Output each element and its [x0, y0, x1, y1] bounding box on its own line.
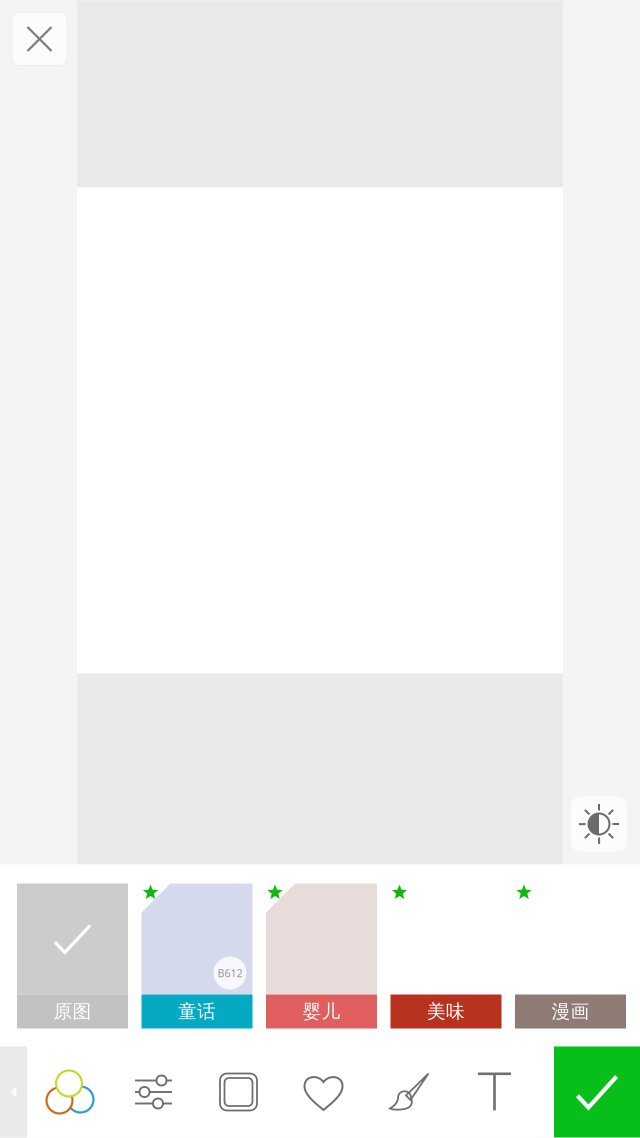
- button[interactable]: Frame: [196, 1046, 281, 1137]
- button[interactable]: 婴儿: [266, 883, 377, 1028]
- staticText: 童话: [178, 1000, 216, 1023]
- staticText: 婴儿: [302, 1000, 340, 1023]
- staticText: B612: [217, 966, 242, 980]
- button[interactable]: B612: [141, 883, 252, 1028]
- staticText: 漫画: [551, 1000, 589, 1023]
- staticText: 美味: [427, 1000, 465, 1023]
- button[interactable]: Text: [452, 1046, 537, 1137]
- button[interactable]: Brush: [366, 1046, 452, 1137]
- button[interactable]: Brightness: [571, 796, 627, 851]
- staticText: 原图: [53, 1000, 91, 1023]
- button[interactable]: Adjust: [111, 1046, 196, 1137]
- button[interactable]: Done: [554, 1046, 640, 1137]
- button[interactable]: Stickers: [281, 1046, 366, 1137]
- button[interactable]: 原图: [17, 883, 128, 1028]
- button[interactable]: Close: [0, 0, 67, 65]
- button[interactable]: 美味: [390, 883, 501, 1028]
- button[interactable]: Filters: [27, 1046, 111, 1137]
- button[interactable]: 漫画: [515, 883, 626, 1028]
